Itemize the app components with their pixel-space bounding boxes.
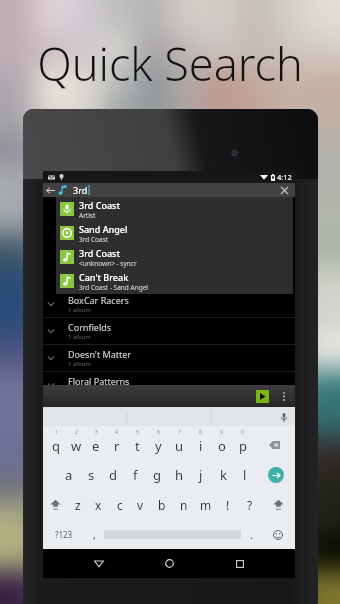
staticText: l [243, 466, 247, 484]
button[interactable]: Backspace [253, 426, 295, 459]
button[interactable]: Doesn't Matter [43, 345, 295, 372]
staticText: 4 [115, 429, 118, 436]
button[interactable]: BoxCar Racers [43, 291, 295, 318]
staticText: , [93, 527, 96, 542]
button[interactable]: b [151, 490, 173, 520]
staticText: u [175, 437, 184, 455]
staticText: 6 [157, 429, 160, 436]
button[interactable]: Search [256, 459, 295, 490]
button[interactable]: 3 [86, 426, 106, 459]
staticText: m [200, 497, 212, 513]
button[interactable]: Sand Angel [56, 221, 293, 245]
other: Back [45, 185, 56, 196]
button[interactable]: k [212, 459, 234, 490]
button[interactable]: Emoji [261, 520, 295, 549]
button[interactable]: 9 [211, 426, 232, 459]
staticText: 4:12 [277, 172, 292, 182]
button[interactable]: 2 [66, 426, 86, 459]
staticText: t [135, 437, 140, 455]
button[interactable]: Shift [43, 490, 67, 520]
staticText: Quick Search [0, 33, 340, 94]
button[interactable]: 0 [232, 426, 253, 459]
staticText: x [95, 497, 102, 513]
staticText: 3rd Coast - Sand Angel [79, 283, 149, 292]
staticText: 0 [241, 429, 244, 436]
staticText: o [218, 437, 226, 455]
button[interactable]: 3rd Coast [56, 245, 293, 269]
button[interactable]: Floral Patterns [43, 372, 295, 399]
button[interactable]: Cornfields [43, 318, 295, 345]
staticText: . [250, 527, 253, 542]
staticText: <unknown> - syncr [79, 259, 137, 268]
button[interactable]: v [130, 490, 151, 520]
button[interactable]: ! [217, 490, 239, 520]
button[interactable]: 1 [46, 426, 66, 459]
button[interactable]: 3rd Coast [56, 197, 293, 221]
staticText: h [175, 466, 184, 484]
button[interactable]: More options [277, 390, 290, 403]
staticText: d [109, 466, 117, 484]
staticText: 8 [199, 429, 202, 436]
staticText: y [155, 437, 162, 455]
button[interactable]: Shift [261, 490, 295, 520]
button[interactable]: m [195, 490, 217, 520]
staticText: 1 album [68, 333, 91, 341]
button[interactable]: Play all [256, 390, 269, 403]
staticText: e [92, 437, 100, 455]
staticText: 2 [75, 429, 78, 436]
staticText: w [71, 437, 82, 455]
staticText: r [114, 437, 120, 455]
button[interactable]: , [84, 520, 104, 549]
button[interactable]: Clear query [277, 183, 291, 197]
button[interactable]: Can't Break [56, 269, 293, 293]
button[interactable]: c [109, 490, 130, 520]
staticText: Can't Break [79, 271, 129, 283]
button[interactable]: . [241, 520, 261, 549]
button[interactable]: d [102, 459, 124, 490]
button[interactable]: 4 [106, 426, 127, 459]
staticText: q [52, 437, 60, 455]
staticText: p [239, 437, 247, 455]
button[interactable]: Space [104, 520, 241, 549]
staticText: Artist [79, 211, 96, 220]
button[interactable]: Back [43, 183, 295, 197]
button[interactable]: 5 [127, 426, 148, 459]
staticText: s [88, 466, 95, 484]
button[interactable]: Recent apps [225, 549, 255, 578]
button[interactable]: ?123 [43, 520, 84, 549]
button[interactable]: f [124, 459, 146, 490]
staticText: 3 [95, 429, 98, 436]
staticText: 3rd Coast [79, 235, 109, 244]
button[interactable]: Home [154, 549, 184, 578]
button[interactable]: x [88, 490, 109, 520]
staticText: 3rd [73, 184, 88, 196]
button[interactable]: z [67, 490, 88, 520]
staticText: 5 [136, 429, 139, 436]
staticText: 7 [178, 429, 181, 436]
staticText: ! [226, 497, 230, 513]
button[interactable]: 7 [169, 426, 190, 459]
button[interactable]: j [190, 459, 212, 490]
button[interactable]: 8 [190, 426, 211, 459]
button[interactable]: n [173, 490, 195, 520]
button[interactable]: Back [84, 549, 114, 578]
staticText: BoxCar Racers [68, 294, 129, 306]
staticText: f [133, 466, 138, 484]
staticText: 1 album [68, 306, 91, 314]
staticText: Sand Angel [79, 223, 128, 235]
button[interactable]: a [58, 459, 80, 490]
button[interactable]: g [146, 459, 168, 490]
button[interactable]: ? [239, 490, 261, 520]
staticText: 9 [220, 429, 223, 436]
staticText: 1 [55, 429, 58, 436]
staticText: Cornfields [68, 321, 112, 333]
button[interactable]: h [168, 459, 190, 490]
staticText: 3rd Coast [79, 199, 120, 211]
button[interactable]: s [80, 459, 102, 490]
staticText: b [158, 497, 166, 513]
button[interactable]: Voice input [278, 411, 290, 423]
staticText: Floral Patterns [68, 375, 130, 387]
button[interactable]: l [234, 459, 256, 490]
button[interactable]: 6 [148, 426, 169, 459]
staticText: v [137, 497, 144, 513]
